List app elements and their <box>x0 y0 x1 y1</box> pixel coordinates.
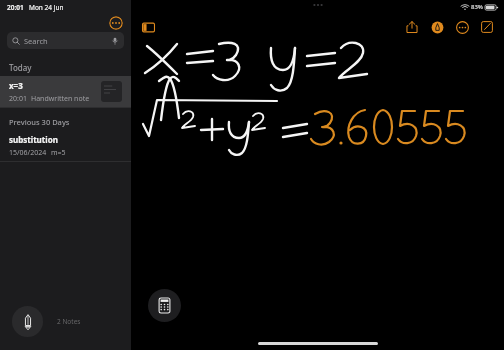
staticText: Search <box>24 36 48 46</box>
staticText: 83% <box>471 3 483 11</box>
button[interactable]: substitution <box>0 130 131 161</box>
staticText: Today <box>9 62 32 73</box>
staticText: 15/06/2024 <box>9 148 47 158</box>
button[interactable]: More options <box>109 16 123 30</box>
button[interactable]: New note <box>12 306 43 337</box>
staticText: substitution <box>9 134 58 145</box>
button[interactable]: Calculator <box>148 289 181 322</box>
button[interactable]: Compose <box>479 19 495 35</box>
button[interactable]: Toggle sidebar <box>140 19 156 35</box>
button[interactable]: x=3 <box>0 76 131 107</box>
staticText: m=5 <box>51 148 66 158</box>
staticText: 20:01 <box>9 94 27 104</box>
button[interactable]: Search <box>7 32 124 49</box>
button[interactable]: More <box>454 19 470 35</box>
staticText: 2 Notes <box>57 317 81 326</box>
staticText: 20:01 <box>7 3 24 12</box>
button[interactable]: Share <box>404 19 420 35</box>
staticText: x=3 <box>9 80 23 91</box>
staticText: Handwritten note <box>31 94 90 104</box>
staticText: Mon 24 Jun <box>29 3 64 12</box>
staticText: Previous 30 Days <box>9 117 70 127</box>
button[interactable]: Markup <box>429 19 445 35</box>
